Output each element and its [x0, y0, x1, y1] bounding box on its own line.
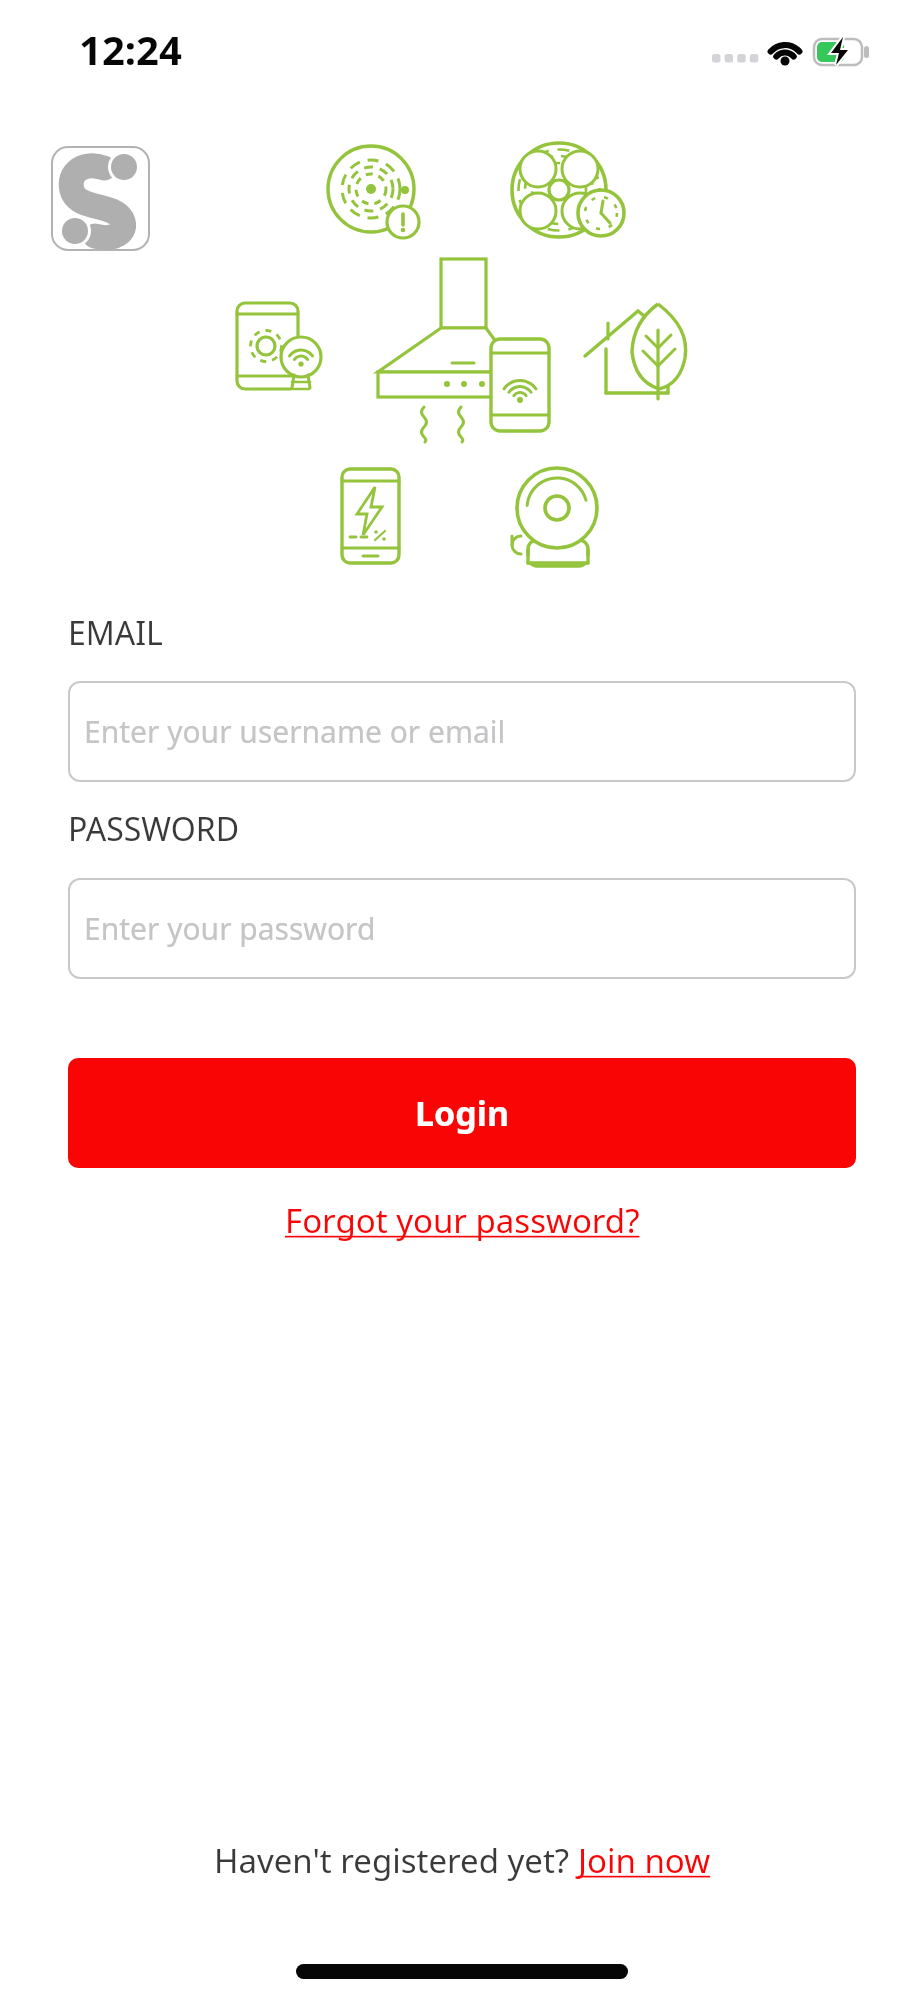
- button[interactable]: Join now: [578, 1838, 711, 1883]
- staticText: PASSWORD: [68, 807, 240, 851]
- button[interactable]: Forgot your password?: [285, 1198, 640, 1243]
- staticText: EMAIL: [68, 611, 163, 655]
- staticText: Login: [415, 1090, 510, 1136]
- staticText: Enter your password: [84, 908, 376, 949]
- staticText: Haven't registered yet?: [214, 1838, 578, 1883]
- staticText: 12:24: [79, 22, 182, 76]
- button[interactable]: Enter your username or email: [68, 681, 856, 782]
- button[interactable]: Login: [68, 1058, 856, 1168]
- button[interactable]: Enter your password: [68, 878, 856, 979]
- staticText: Enter your username or email: [84, 711, 506, 752]
